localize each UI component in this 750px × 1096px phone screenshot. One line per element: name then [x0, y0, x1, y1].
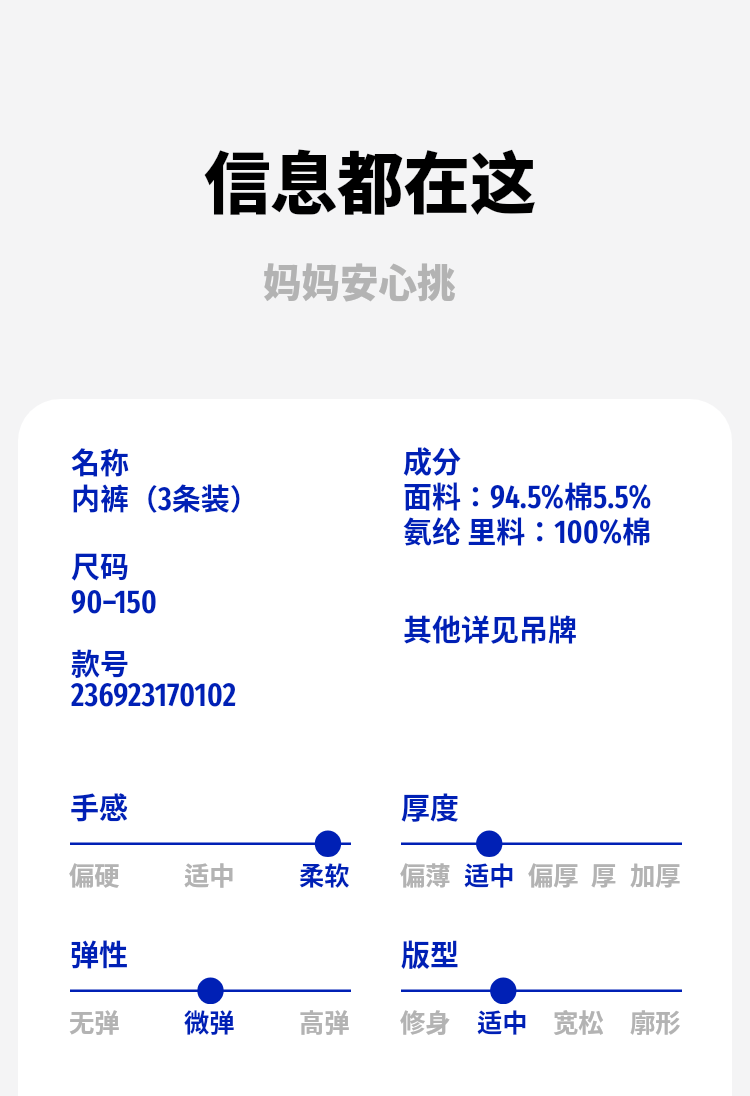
staticText: 高弹 — [299, 1003, 350, 1040]
button[interactable]: 手感 — [70, 794, 351, 894]
staticText: 名称 — [71, 440, 130, 482]
staticText: 偏厚 — [528, 856, 579, 893]
button[interactable]: 厚度 — [401, 794, 682, 894]
staticText: 236923170102 — [71, 676, 237, 714]
staticText: 修身 — [400, 1003, 451, 1040]
staticText: 面料：94.5%棉5.5% — [403, 474, 652, 516]
staticText: 厚度 — [401, 785, 460, 827]
staticText: 手感 — [70, 785, 129, 827]
staticText: 版型 — [401, 932, 460, 974]
staticText: 微弹 — [184, 1003, 235, 1040]
staticText: 尺码 — [71, 544, 130, 586]
staticText: 款号 — [71, 641, 130, 683]
staticText: 适中 — [184, 856, 235, 893]
staticText: 90–150 — [71, 583, 157, 621]
staticText: 信息都在这 — [204, 131, 537, 227]
staticText: 无弹 — [69, 1003, 120, 1040]
staticText: 成分 — [403, 439, 462, 481]
staticText: 宽松 — [553, 1003, 604, 1040]
staticText: 适中 — [464, 856, 515, 893]
staticText: 廓形 — [630, 1003, 681, 1040]
staticText: 妈妈安心挑 — [263, 252, 456, 308]
staticText: 氨纶 里料：100%棉 — [403, 509, 652, 551]
staticText: 偏硬 — [69, 856, 120, 893]
staticText: 柔软 — [299, 856, 350, 893]
staticText: 适中 — [477, 1003, 528, 1040]
staticText: 其他详见吊牌 — [403, 607, 578, 649]
staticText: 弹性 — [70, 932, 129, 974]
staticText: 内裤（3条装） — [71, 476, 259, 518]
staticText: 加厚 — [630, 856, 681, 893]
button[interactable]: 版型 — [401, 941, 682, 1041]
button[interactable]: 弹性 — [70, 941, 351, 1041]
staticText: 厚 — [591, 856, 617, 893]
staticText: 偏薄 — [400, 856, 451, 893]
